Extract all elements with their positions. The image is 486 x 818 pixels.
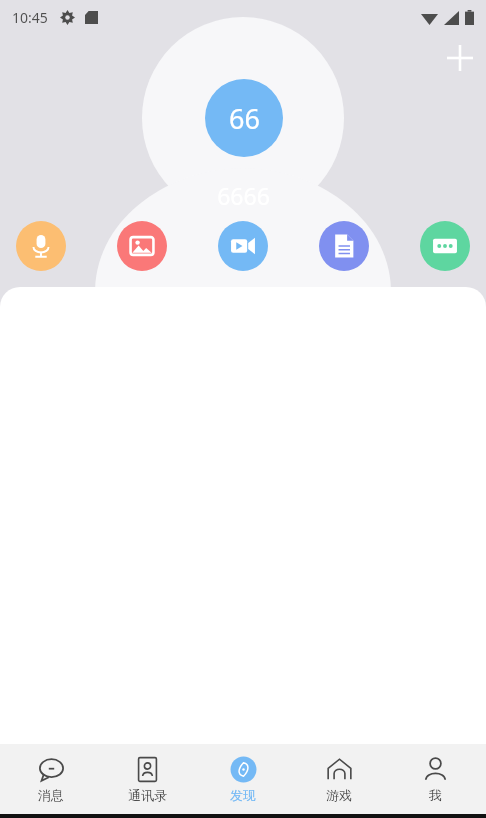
- button[interactable]: 发现: [198, 744, 288, 814]
- staticText: 6666: [217, 180, 270, 211]
- staticText: 66: [229, 100, 260, 137]
- button[interactable]: Document: [319, 221, 369, 271]
- button[interactable]: 我: [390, 744, 480, 814]
- button[interactable]: More: [420, 221, 470, 271]
- button[interactable]: 游戏: [294, 744, 384, 814]
- staticText: 发现: [230, 787, 256, 803]
- button[interactable]: 66: [205, 79, 283, 157]
- button[interactable]: 通讯录: [102, 744, 192, 814]
- staticText: 我: [429, 787, 442, 803]
- staticText: 游戏: [326, 787, 352, 803]
- button[interactable]: 消息: [6, 744, 96, 814]
- staticText: 消息: [38, 787, 64, 803]
- button[interactable]: Photo: [117, 221, 167, 271]
- staticText: 10:45: [12, 8, 48, 27]
- staticText: 通讯录: [128, 787, 167, 803]
- button[interactable]: Add: [436, 34, 484, 82]
- button[interactable]: Video: [218, 221, 268, 271]
- button[interactable]: Voice: [16, 221, 66, 271]
